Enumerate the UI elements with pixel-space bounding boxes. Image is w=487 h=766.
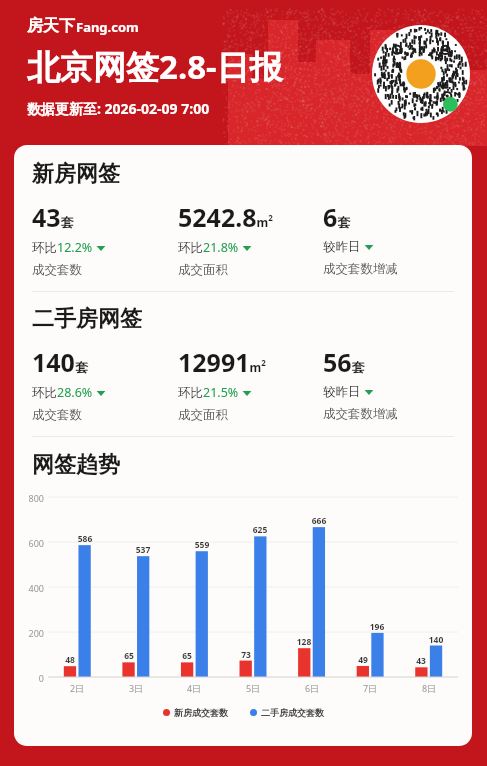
- staticText: 新房网签: [32, 160, 120, 188]
- staticText: 600: [14, 537, 44, 549]
- staticText: 537: [131, 544, 155, 556]
- staticText: 12991m2: [178, 345, 266, 379]
- staticText: 成交套数增减: [323, 261, 398, 277]
- staticText: 7日: [356, 682, 384, 694]
- staticText: 666: [307, 515, 331, 527]
- staticText: 56套: [323, 345, 365, 379]
- button[interactable]: 140套: [32, 345, 178, 423]
- staticText: 65: [117, 650, 141, 662]
- staticText: 196: [365, 621, 389, 633]
- staticText: 625: [248, 524, 272, 536]
- staticText: 环比21.8%: [178, 239, 239, 256]
- staticText: 43: [409, 655, 433, 667]
- staticText: 559: [190, 539, 214, 551]
- staticText: 128: [292, 636, 316, 648]
- staticText: 3日: [122, 682, 150, 694]
- staticText: Fang.com: [76, 18, 139, 36]
- staticText: 较昨日: [323, 239, 361, 255]
- staticText: 49: [351, 654, 375, 666]
- staticText: 140: [424, 634, 448, 646]
- button[interactable]: 5242.8m2: [178, 200, 323, 278]
- staticText: 586: [73, 533, 97, 545]
- staticText: 43套: [32, 200, 74, 234]
- staticText: 800: [14, 492, 44, 504]
- button[interactable]: 56套: [323, 345, 460, 422]
- button[interactable]: 6套: [323, 200, 460, 277]
- staticText: 成交套数: [32, 262, 82, 278]
- staticText: 400: [14, 582, 44, 594]
- staticText: 73: [234, 649, 258, 661]
- staticText: 2日: [63, 682, 91, 694]
- staticText: 北京网签2.8-日报: [27, 44, 283, 89]
- staticText: 5日: [239, 682, 267, 694]
- staticText: 200: [14, 627, 44, 639]
- button[interactable]: 小程序二维码: [372, 25, 470, 123]
- staticText: 环比21.5%: [178, 384, 239, 401]
- staticText: 成交套数: [32, 407, 82, 423]
- staticText: 房天下: [27, 16, 75, 36]
- button[interactable]: 12991m2: [178, 345, 323, 423]
- staticText: 成交面积: [178, 407, 228, 423]
- staticText: 48: [58, 654, 82, 666]
- staticText: 网签趋势: [32, 451, 120, 479]
- button[interactable]: 二手房成交套数: [250, 707, 324, 718]
- staticText: 成交套数增减: [323, 406, 398, 422]
- staticText: 4日: [180, 682, 208, 694]
- staticText: 环比28.6%: [32, 384, 93, 401]
- staticText: 140套: [32, 345, 88, 379]
- staticText: 8日: [415, 682, 443, 694]
- staticText: 5242.8m2: [178, 200, 273, 234]
- staticText: 二手房成交套数: [261, 707, 324, 718]
- staticText: 0: [14, 672, 44, 684]
- button[interactable]: 新房成交套数: [163, 707, 228, 718]
- staticText: 成交面积: [178, 262, 228, 278]
- staticText: 较昨日: [323, 384, 361, 400]
- staticText: 6套: [323, 200, 351, 234]
- staticText: 新房成交套数: [174, 707, 228, 718]
- staticText: 6日: [298, 682, 326, 694]
- staticText: 二手房网签: [32, 305, 142, 333]
- staticText: 65: [175, 650, 199, 662]
- staticText: 环比12.2%: [32, 239, 93, 256]
- staticText: 数据更新至: 2026-02-09 7:00: [27, 99, 210, 118]
- button[interactable]: 43套: [32, 200, 178, 278]
